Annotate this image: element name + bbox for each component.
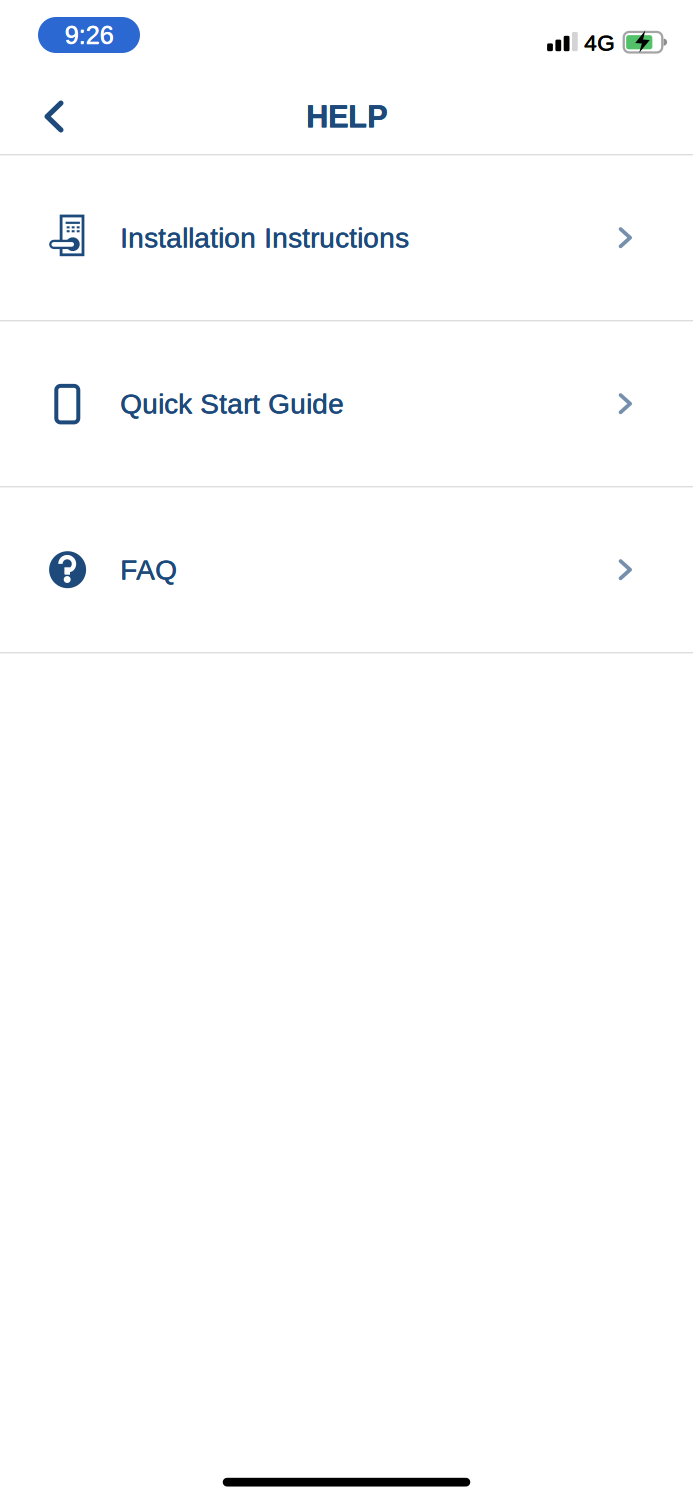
staticText: 4G bbox=[584, 30, 615, 55]
staticText: 4G bbox=[584, 30, 615, 56]
staticText: 9:26 bbox=[64, 21, 113, 50]
staticText: 9:26 bbox=[65, 21, 114, 49]
staticText: 4G bbox=[584, 30, 615, 55]
staticText: FAQ bbox=[120, 554, 177, 585]
button[interactable]: Installation Instructions bbox=[0, 155, 693, 321]
staticText: FAQ bbox=[120, 554, 177, 585]
button[interactable]: Back bbox=[25, 87, 83, 145]
staticText: 9:26 bbox=[64, 21, 113, 49]
staticText: Quick Start Guide bbox=[120, 388, 344, 419]
staticText: HELP bbox=[306, 99, 387, 134]
staticText: Quick Start Guide bbox=[120, 388, 344, 419]
staticText: Installation Instructions bbox=[120, 222, 409, 254]
staticText: FAQ bbox=[120, 554, 177, 586]
staticText: HELP bbox=[306, 100, 387, 134]
staticText: HELP bbox=[307, 99, 388, 134]
staticText: Quick Start Guide bbox=[120, 388, 344, 420]
button[interactable]: FAQ bbox=[0, 487, 693, 653]
button[interactable]: Quick Start Guide bbox=[0, 321, 693, 487]
staticText: Installation Instructions bbox=[120, 222, 409, 253]
staticText: Installation Instructions bbox=[120, 222, 409, 253]
